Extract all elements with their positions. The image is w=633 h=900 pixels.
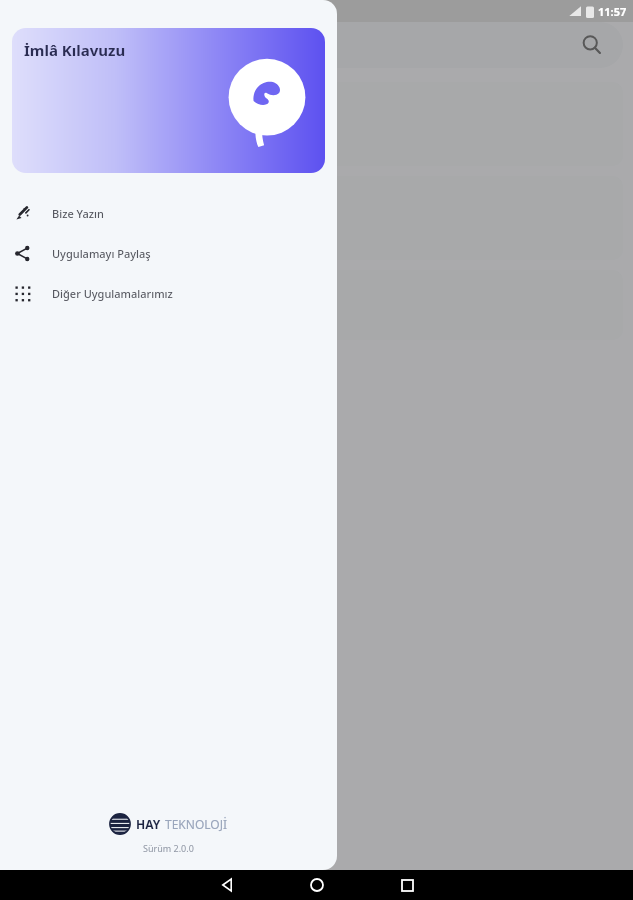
button[interactable]: Uygulamayı Paylaş	[0, 233, 337, 273]
button[interactable]: Diğer Uygulamalarımız	[0, 273, 337, 313]
staticText: Sürüm 2.0.0	[143, 842, 194, 854]
button[interactable]: Bize Yazın	[0, 193, 337, 233]
button[interactable]	[10, 22, 623, 68]
staticText: HAY	[136, 816, 161, 832]
button[interactable]: Recent apps	[390, 870, 424, 900]
staticText: 11:57	[598, 4, 627, 19]
button[interactable]	[10, 270, 623, 340]
staticText: TEKNOLOJİ	[165, 816, 228, 832]
button[interactable]: Back	[210, 870, 244, 900]
staticText: Kelimeye göre hızlıca arama yapın	[24, 115, 232, 133]
staticText: Güncel ve güvenilir bir kaynak	[24, 209, 208, 227]
staticText: İmlâ Kılavuzu	[24, 40, 126, 60]
staticText: Diğer Uygulamalarımız	[52, 286, 173, 301]
button[interactable]: İmlâ Kılavuzu	[12, 28, 325, 173]
staticText: Bize Yazın	[52, 206, 104, 221]
button[interactable]: Kelimeye göre hızlıca arama yapın	[10, 82, 623, 166]
staticText: Uygulamayı Paylaş	[52, 246, 151, 261]
button[interactable]: Home	[300, 870, 334, 900]
button[interactable]: Güncel ve güvenilir bir kaynak	[10, 176, 623, 260]
